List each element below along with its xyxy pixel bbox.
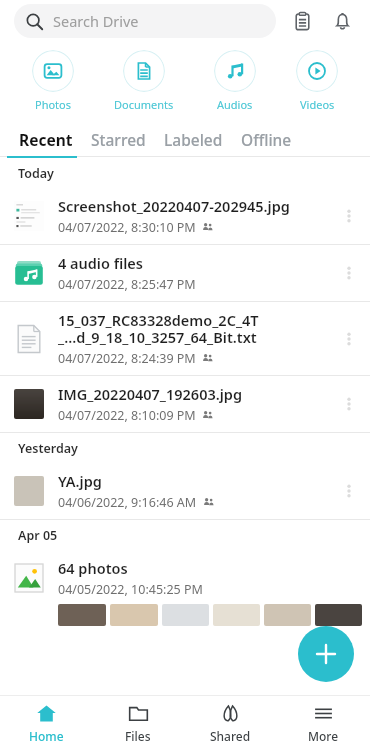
staticText: IMG_20220407_192603.jpg bbox=[58, 384, 243, 404]
button[interactable]: Audios bbox=[206, 48, 264, 114]
staticText: Labeled bbox=[164, 129, 223, 150]
button[interactable]: Videos bbox=[288, 48, 346, 114]
button[interactable]: 4 audio files bbox=[0, 245, 370, 301]
button[interactable]: Recent bbox=[10, 125, 82, 154]
staticText: 04/07/2022, 8:25:47 PM bbox=[58, 276, 196, 293]
staticText: Recent bbox=[19, 129, 73, 150]
staticText: 04/05/2022, 10:45:25 PM bbox=[58, 581, 203, 598]
staticText: Yesterday bbox=[18, 440, 78, 457]
staticText: Search Drive bbox=[53, 11, 139, 31]
staticText: 04/07/2022, 8:30:10 PM bbox=[58, 219, 196, 236]
button[interactable]: More options bbox=[332, 199, 366, 233]
button[interactable]: Labeled bbox=[155, 125, 232, 154]
staticText: 15_037_RC83328demo_2C_4T _...d_9_18_10_3… bbox=[58, 310, 259, 347]
staticText: Files bbox=[125, 728, 151, 744]
button[interactable]: Clipboard bbox=[282, 1, 322, 41]
button[interactable]: Starred bbox=[82, 125, 155, 154]
button[interactable]: Photos bbox=[24, 48, 82, 114]
button[interactable]: More options bbox=[332, 474, 366, 508]
staticText: Home bbox=[29, 728, 64, 744]
button[interactable]: Shared bbox=[184, 696, 277, 750]
button[interactable]: Documents bbox=[106, 48, 182, 114]
staticText: Shared bbox=[210, 728, 251, 744]
staticText: 04/07/2022, 8:10:09 PM bbox=[58, 407, 196, 424]
staticText: Photos bbox=[35, 97, 72, 112]
staticText: 04/07/2022, 8:24:39 PM bbox=[58, 350, 196, 367]
button[interactable]: Create new bbox=[298, 626, 354, 682]
button[interactable]: Notifications bbox=[322, 1, 362, 41]
button[interactable]: Home bbox=[0, 696, 92, 750]
button[interactable]: YA.jpg bbox=[0, 463, 370, 519]
staticText: YA.jpg bbox=[58, 471, 102, 491]
staticText: 64 photos bbox=[58, 558, 128, 578]
staticText: Audios bbox=[217, 97, 253, 112]
staticText: 04/06/2022, 9:16:46 AM bbox=[58, 494, 197, 511]
staticText: Offline bbox=[241, 129, 292, 150]
button[interactable]: 15_037_RC83328demo_2C_4T _...d_9_18_10_3… bbox=[0, 302, 370, 375]
button[interactable]: Offline bbox=[232, 125, 301, 154]
button[interactable]: Files bbox=[92, 696, 184, 750]
button[interactable]: More options bbox=[332, 387, 366, 421]
staticText: Today bbox=[18, 165, 54, 182]
staticText: 4 audio files bbox=[58, 253, 143, 273]
staticText: Documents bbox=[114, 97, 174, 112]
staticText: Screenshot_20220407-202945.jpg bbox=[58, 196, 290, 216]
button[interactable]: More options bbox=[332, 256, 366, 290]
staticText: More bbox=[308, 728, 339, 744]
button[interactable]: More bbox=[277, 696, 370, 750]
button[interactable]: More options bbox=[332, 322, 366, 356]
staticText: Apr 05 bbox=[18, 527, 58, 544]
staticText: Starred bbox=[91, 129, 146, 150]
staticText: Videos bbox=[300, 97, 335, 112]
button[interactable]: Search Drive bbox=[14, 4, 276, 38]
button[interactable]: Screenshot_20220407-202945.jpg bbox=[0, 188, 370, 244]
button[interactable]: 64 photos bbox=[0, 550, 370, 626]
button[interactable]: IMG_20220407_192603.jpg bbox=[0, 376, 370, 432]
